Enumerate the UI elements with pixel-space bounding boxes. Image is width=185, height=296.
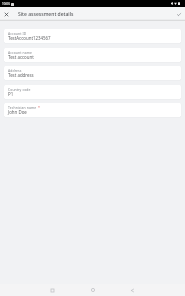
staticText: Address <box>8 68 22 73</box>
staticText: Test address <box>8 72 34 78</box>
button[interactable]: Account ID <box>4 29 181 43</box>
button[interactable]: Account name <box>4 48 181 62</box>
button[interactable]: Home <box>83 284 103 296</box>
staticText: Test account <box>8 54 34 60</box>
staticText: Account name <box>8 50 33 55</box>
staticText: P1 <box>8 91 14 97</box>
staticText: Country code <box>8 87 31 92</box>
button[interactable]: Country code <box>4 85 181 99</box>
button[interactable]: Back <box>122 284 142 296</box>
button[interactable]: Address <box>4 66 181 80</box>
staticText: * <box>37 105 40 110</box>
button[interactable]: Close <box>0 7 13 21</box>
staticText: Technician name <box>8 105 37 110</box>
staticText: John Doe <box>8 109 27 115</box>
button[interactable]: Save <box>172 7 185 21</box>
staticText: Site assessment details <box>18 11 74 18</box>
button[interactable]: Technician name <box>4 103 181 117</box>
staticText: 10:06 <box>2 2 10 6</box>
staticText: TestAccount1234567 <box>8 35 51 41</box>
button[interactable]: Recents <box>42 284 62 296</box>
staticText: Account ID <box>8 31 27 36</box>
